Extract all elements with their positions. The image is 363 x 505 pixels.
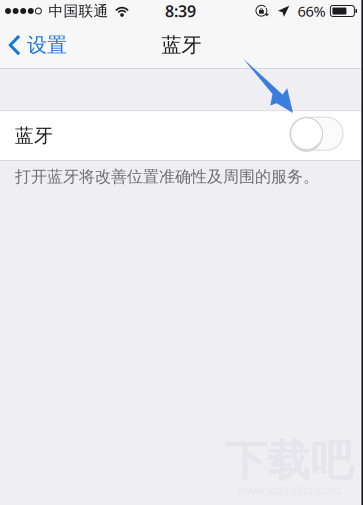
button[interactable]: 蓝牙	[0, 111, 363, 160]
staticText: 蓝牙	[161, 33, 201, 57]
staticText: 设置	[27, 33, 67, 57]
staticText: 8:39	[165, 0, 196, 22]
staticText: 蓝牙	[15, 124, 53, 147]
staticText: 打开蓝牙将改善位置准确性及周围的服务。	[15, 167, 319, 186]
button[interactable]: 设置	[0, 24, 77, 66]
staticText: 66%	[297, 1, 325, 21]
staticText: 中国联通	[48, 2, 108, 20]
staticText: 下载吧	[224, 435, 353, 487]
